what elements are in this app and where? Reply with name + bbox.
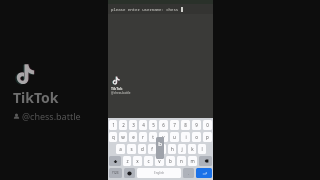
staticText: h <box>171 146 174 152</box>
button[interactable]: z <box>123 156 131 166</box>
staticText: 4 <box>142 122 145 128</box>
staticText: 2 <box>122 122 125 128</box>
button[interactable]: u <box>170 132 179 142</box>
button[interactable]: v <box>155 156 164 166</box>
staticText: i <box>185 134 187 140</box>
button[interactable]: n <box>177 156 186 166</box>
button[interactable]: x <box>133 156 142 166</box>
staticText: . <box>188 171 190 176</box>
staticText: 3 <box>132 122 135 128</box>
staticText: a <box>119 146 122 152</box>
button[interactable]: 6 <box>159 120 168 130</box>
staticText: 5 <box>152 122 155 128</box>
button[interactable]: 0 <box>203 120 212 130</box>
staticText: p <box>206 134 209 140</box>
button[interactable]: 3 <box>129 120 137 130</box>
staticText: ?123 <box>112 171 119 175</box>
button[interactable]: e <box>129 132 137 142</box>
staticText: w <box>121 134 125 140</box>
button[interactable]: t <box>149 132 157 142</box>
button[interactable]: y <box>159 132 168 142</box>
staticText: u <box>173 134 176 140</box>
staticText: o <box>195 134 198 140</box>
button[interactable]: m <box>188 156 197 166</box>
staticText: z <box>126 158 129 164</box>
staticText: r <box>142 134 144 140</box>
staticText: b <box>169 158 172 164</box>
button[interactable]: l <box>198 144 206 154</box>
staticText: q <box>112 134 115 140</box>
button[interactable]: 9 <box>192 120 201 130</box>
button[interactable]: f <box>148 144 156 154</box>
staticText: j <box>181 146 183 152</box>
staticText: x <box>136 158 139 164</box>
staticText: @chess.battle <box>111 91 131 95</box>
staticText: f <box>151 146 153 152</box>
staticText: b <box>158 140 162 148</box>
button[interactable]: i <box>181 132 190 142</box>
button[interactable]: j <box>178 144 186 154</box>
button[interactable]: b <box>166 156 175 166</box>
button[interactable]: Shift <box>109 156 121 166</box>
button[interactable]: r <box>139 132 147 142</box>
button[interactable]: 4 <box>139 120 147 130</box>
button[interactable]: Period <box>183 168 194 178</box>
staticText: 8 <box>184 122 187 128</box>
staticText: v <box>158 158 161 164</box>
button[interactable]: 1 <box>109 120 117 130</box>
button[interactable]: g <box>158 144 166 154</box>
staticText: TikTok <box>13 88 59 107</box>
staticText: please enter username: chess <box>111 7 179 12</box>
staticText: c <box>147 158 150 164</box>
staticText: 6 <box>162 122 165 128</box>
staticText: t <box>152 134 154 140</box>
staticText: 1 <box>112 122 115 128</box>
button[interactable]: d <box>138 144 146 154</box>
staticText: m <box>190 158 195 164</box>
staticText: s <box>130 146 133 152</box>
staticText: English <box>154 171 165 175</box>
staticText: y <box>162 134 165 140</box>
staticText: d <box>141 146 144 152</box>
button[interactable]: c <box>144 156 153 166</box>
button[interactable]: Symbols <box>109 168 122 178</box>
button[interactable]: k <box>188 144 196 154</box>
button[interactable]: o <box>192 132 201 142</box>
staticText: k <box>191 146 194 152</box>
staticText: TikTok <box>111 86 123 91</box>
staticText: l <box>201 146 203 152</box>
staticText: 0 <box>206 122 209 128</box>
button[interactable]: s <box>127 144 136 154</box>
button[interactable]: h <box>168 144 176 154</box>
button[interactable]: 5 <box>149 120 157 130</box>
staticText: @chess.battle <box>22 110 81 122</box>
staticText: n <box>180 158 183 164</box>
button[interactable]: Enter <box>196 168 212 178</box>
button[interactable]: 8 <box>181 120 190 130</box>
button[interactable]: q <box>109 132 117 142</box>
staticText: e <box>132 134 135 140</box>
staticText: 9 <box>195 122 198 128</box>
button[interactable]: a <box>116 144 125 154</box>
staticText: 7 <box>173 122 176 128</box>
button[interactable]: Space <box>137 168 181 178</box>
button[interactable]: 2 <box>119 120 127 130</box>
button[interactable]: Emoji <box>124 168 135 178</box>
button[interactable]: w <box>119 132 127 142</box>
button[interactable]: p <box>203 132 212 142</box>
button[interactable]: Backspace <box>199 156 212 166</box>
button[interactable]: 7 <box>170 120 179 130</box>
